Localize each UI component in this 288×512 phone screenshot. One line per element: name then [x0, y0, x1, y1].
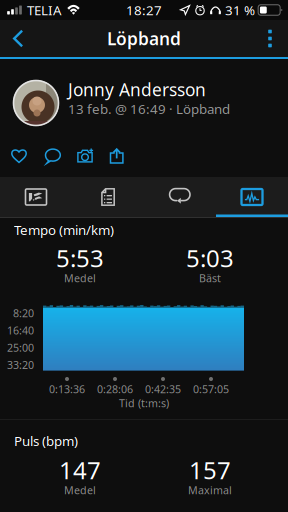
- staticText: 18:27: [126, 1, 162, 19]
- staticText: 0:42:35: [145, 382, 181, 396]
- button[interactable]: Details: [72, 177, 144, 217]
- staticText: Medel: [64, 483, 96, 497]
- button[interactable]: Charts: [216, 177, 288, 217]
- staticText: 31 %: [225, 1, 255, 19]
- button[interactable]: Back: [0, 20, 36, 57]
- staticText: Tempo (min/km): [14, 221, 114, 239]
- staticText: TELIA: [27, 1, 62, 19]
- button[interactable]: Add photo: [76, 147, 94, 165]
- staticText: 5:03: [186, 242, 234, 274]
- staticText: 147: [59, 454, 101, 486]
- button[interactable]: Share: [109, 147, 125, 165]
- button[interactable]: Laps: [144, 177, 216, 217]
- button[interactable]: Comment: [44, 147, 62, 165]
- staticText: 0:57:05: [193, 382, 229, 396]
- button[interactable]: Like: [10, 147, 28, 165]
- staticText: Medel: [64, 271, 96, 285]
- staticText: Tid (t:m:s): [119, 396, 169, 410]
- button[interactable]: Map: [0, 177, 72, 217]
- staticText: Bäst: [199, 271, 221, 285]
- staticText: Löpband: [107, 27, 181, 50]
- staticText: 13 feb. @ 16:49 · Löpband: [68, 100, 230, 118]
- staticText: Jonny Andersson: [68, 78, 206, 101]
- staticText: 5:53: [56, 242, 104, 274]
- staticText: Puls (bpm): [14, 432, 78, 450]
- staticText: 0:13:36: [49, 382, 85, 396]
- button[interactable]: More options: [252, 20, 288, 57]
- staticText: Maximal: [188, 483, 232, 497]
- staticText: 33:20: [7, 358, 34, 372]
- staticText: 0:28:06: [97, 382, 133, 396]
- staticText: 8:20: [13, 306, 34, 320]
- staticText: 25:00: [7, 341, 34, 355]
- staticText: 16:40: [7, 323, 34, 337]
- staticText: 157: [189, 454, 231, 486]
